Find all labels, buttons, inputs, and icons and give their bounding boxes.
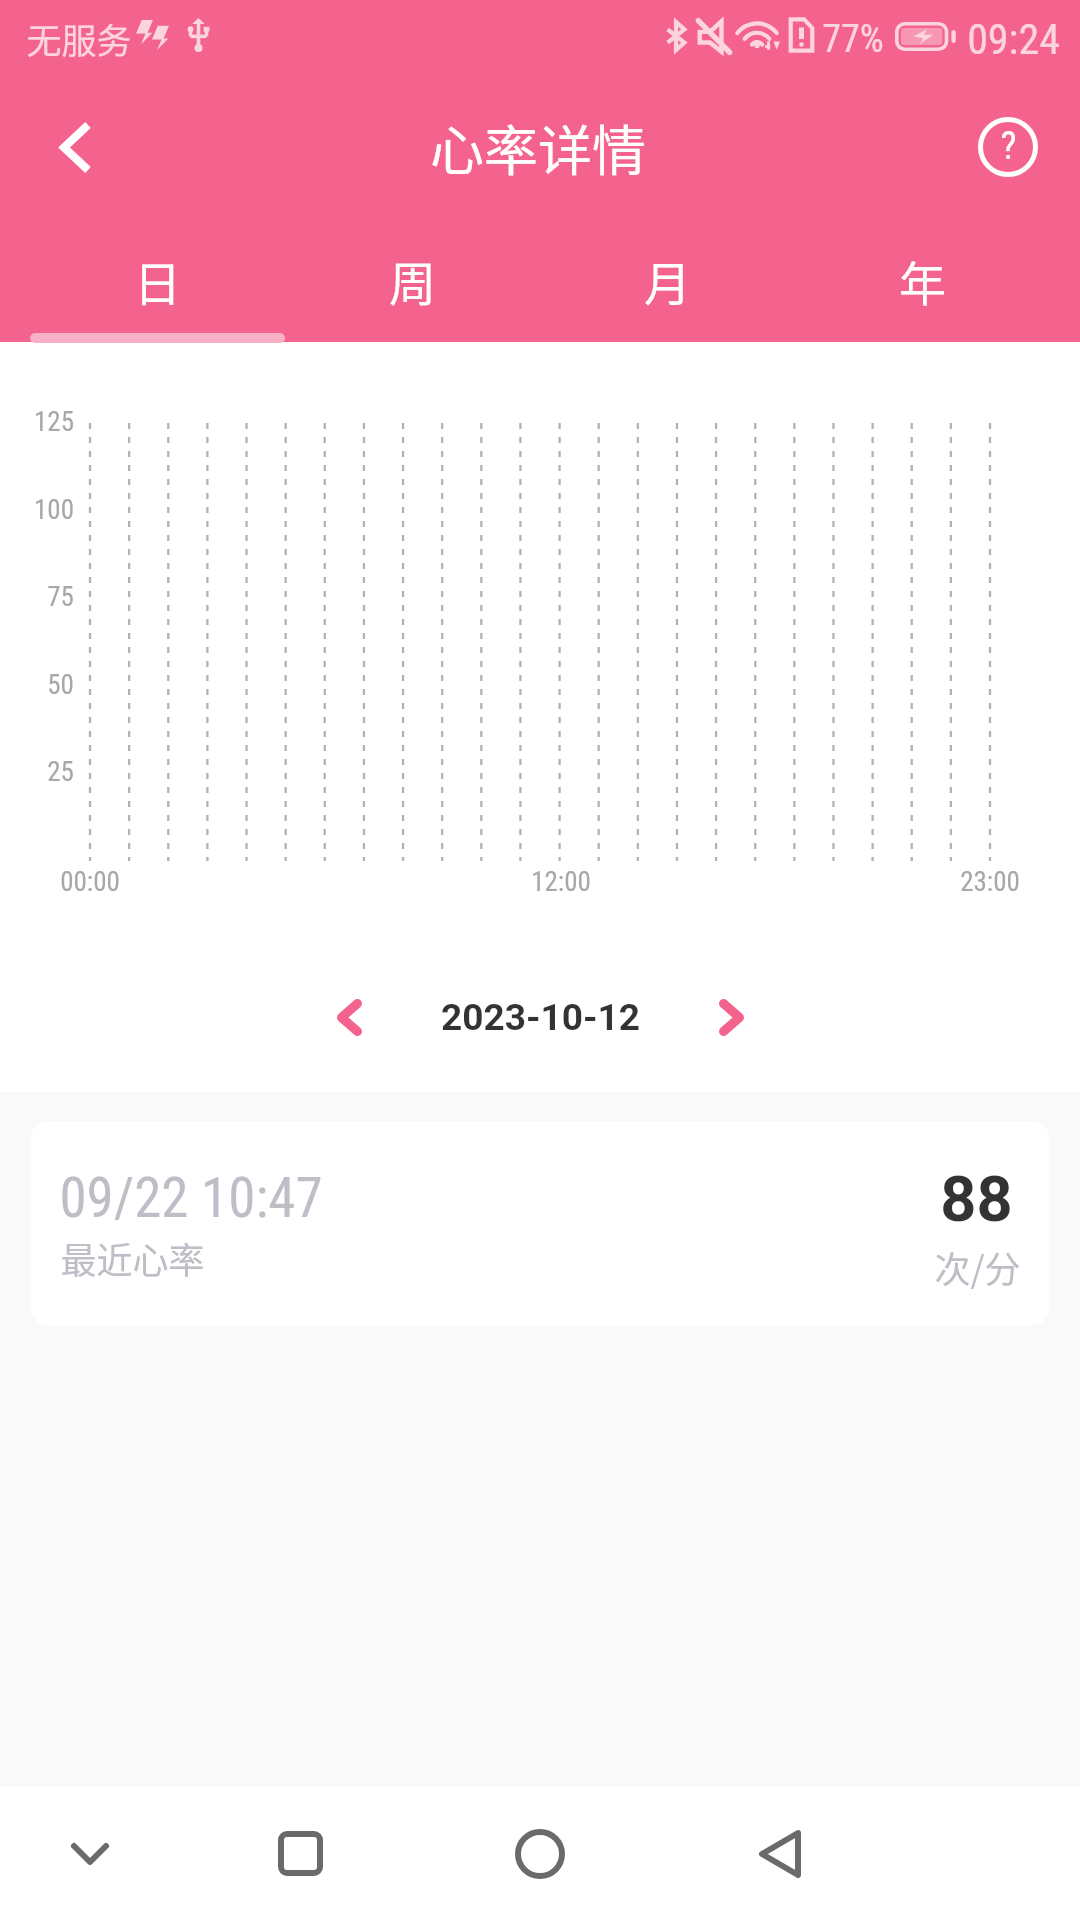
staticText: 23:00	[960, 866, 1020, 898]
button[interactable]: Previous day	[306, 974, 392, 1060]
staticText: 25	[47, 756, 74, 788]
staticText: 09:24	[967, 15, 1060, 64]
staticText: 无服务	[26, 13, 132, 64]
button[interactable]: Recent apps	[230, 1793, 370, 1914]
button[interactable]: 周	[285, 228, 540, 342]
staticText: 最近心率	[60, 1232, 205, 1284]
button[interactable]: Home	[470, 1793, 610, 1914]
button[interactable]: Next day	[688, 974, 774, 1060]
staticText: 00:00	[60, 866, 120, 898]
staticText: ?	[1000, 124, 1017, 169]
staticText: 88	[940, 1163, 1013, 1237]
button[interactable]: Back	[710, 1793, 850, 1914]
staticText: 125	[34, 406, 74, 438]
staticText: 月	[644, 246, 691, 314]
staticText: 77%	[822, 17, 884, 62]
staticText: 09/22 10:47	[59, 1166, 323, 1230]
button[interactable]: 月	[540, 228, 795, 342]
button[interactable]: Back	[39, 110, 113, 184]
button[interactable]: 年	[795, 228, 1050, 342]
button[interactable]: 09/22 10:47	[30, 1121, 1050, 1326]
staticText: 50	[47, 669, 74, 701]
staticText: 100	[34, 494, 74, 526]
button[interactable]: 日	[30, 228, 285, 342]
staticText: 日	[134, 246, 181, 314]
staticText: 12:00	[531, 866, 591, 898]
staticText: 2023-10-12	[441, 996, 640, 1039]
button[interactable]: Help	[976, 115, 1040, 179]
staticText: 年	[899, 246, 946, 314]
staticText: 周	[389, 246, 436, 314]
button[interactable]: Hide keyboard	[20, 1793, 160, 1914]
staticText: 次/分	[934, 1241, 1021, 1293]
staticText: 心率详情	[430, 108, 646, 186]
staticText: 75	[47, 581, 74, 613]
